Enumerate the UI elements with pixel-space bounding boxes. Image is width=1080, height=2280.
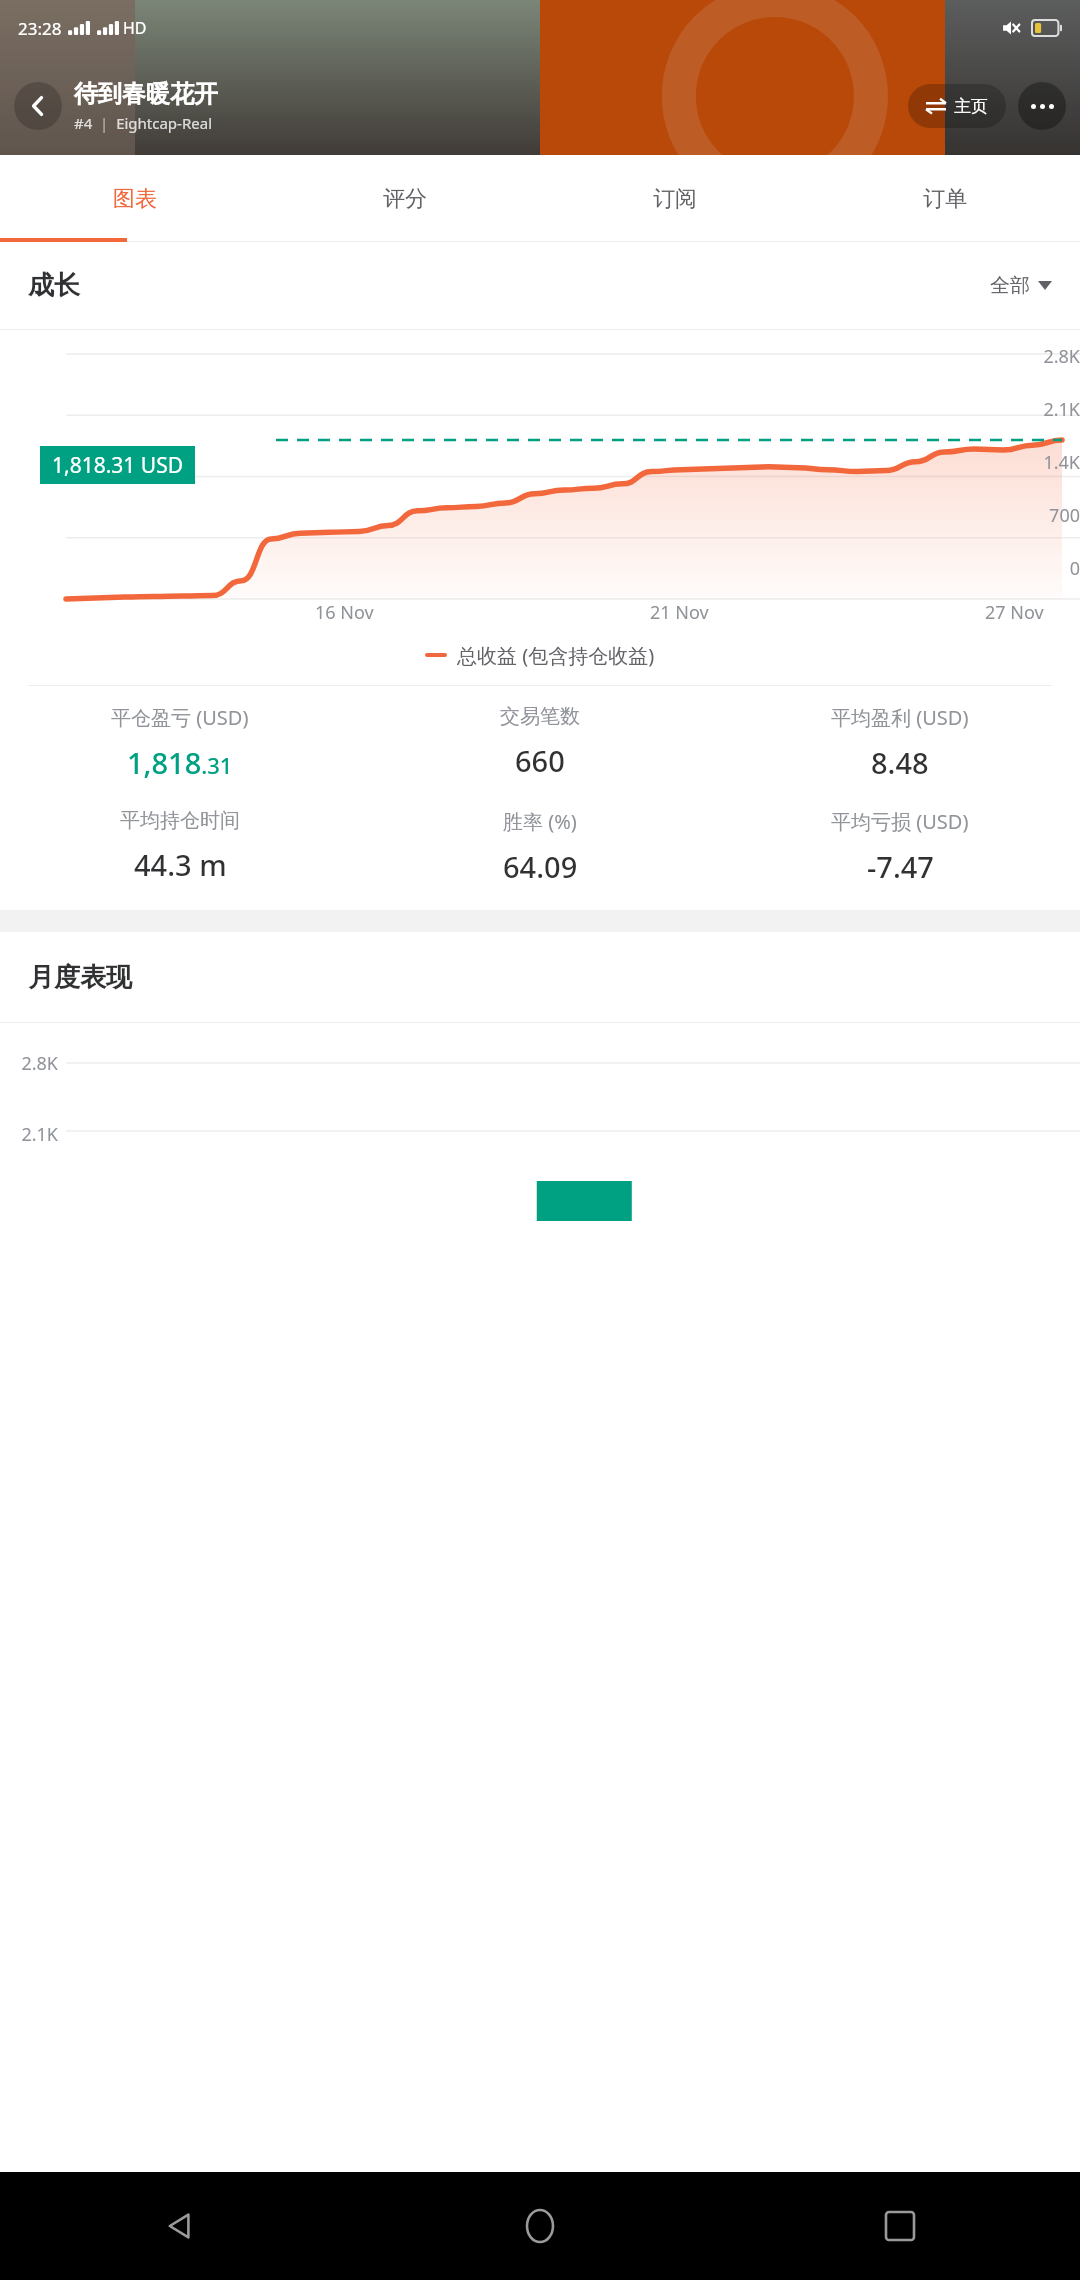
staticText: HD xyxy=(123,17,147,39)
button[interactable]: Home xyxy=(360,2172,720,2280)
staticText: 44.3 m xyxy=(134,845,227,884)
staticText: 700 xyxy=(1020,503,1080,528)
staticText: 图表 xyxy=(113,185,157,213)
staticText: 平均持仓时间 xyxy=(120,808,240,833)
staticText: 订阅 xyxy=(653,185,697,213)
staticText: 1,818.31 USD xyxy=(52,451,183,480)
button[interactable]: 平仓盈亏 (USD) xyxy=(0,704,360,782)
staticText: -7.47 xyxy=(867,847,934,886)
staticText: 月度表现 xyxy=(28,961,132,994)
staticText: 21 Nov xyxy=(650,600,709,625)
staticText: 2.8K xyxy=(0,1051,58,1076)
button[interactable]: Back xyxy=(0,2172,360,2280)
button[interactable]: 平均持仓时间 xyxy=(0,808,360,884)
staticText: 胜率 (%) xyxy=(503,808,577,835)
staticText: 0 xyxy=(1020,556,1080,581)
staticText: 待到春暖花开 xyxy=(74,79,218,109)
staticText: 23:28 xyxy=(18,17,62,40)
button[interactable]: 全部 xyxy=(990,273,1052,298)
staticText: 全部 xyxy=(990,273,1030,298)
button[interactable]: 主页 xyxy=(908,84,1006,128)
staticText: 订单 xyxy=(923,185,967,213)
staticText: 660 xyxy=(515,741,565,780)
staticText: 主页 xyxy=(954,96,988,117)
staticText: 总收益 (包含持仓收益) xyxy=(457,642,655,669)
button[interactable]: Recent apps xyxy=(720,2172,1080,2280)
button[interactable]: 平均盈利 (USD) xyxy=(720,704,1080,782)
button[interactable]: 胜率 (%) xyxy=(360,808,720,886)
staticText: 评分 xyxy=(383,185,427,213)
staticText: 8.48 xyxy=(871,743,929,782)
staticText: 2.1K xyxy=(0,1122,58,1147)
staticText: 64.09 xyxy=(503,847,578,886)
staticText: 平均盈利 (USD) xyxy=(831,704,969,731)
staticText: #4 | Eightcap-Real xyxy=(74,113,213,133)
staticText: 平仓盈亏 (USD) xyxy=(111,704,249,731)
staticText: 27 Nov xyxy=(985,600,1044,625)
button[interactable]: 订阅 xyxy=(540,155,810,242)
button[interactable]: 平均亏损 (USD) xyxy=(720,808,1080,886)
staticText: 2.8K xyxy=(1020,344,1080,369)
staticText: 成长 xyxy=(28,269,80,302)
staticText: 16 Nov xyxy=(315,600,374,625)
staticText: 2.1K xyxy=(1020,397,1080,422)
staticText: 1.4K xyxy=(1020,450,1080,475)
button[interactable]: 订单 xyxy=(810,155,1080,242)
button[interactable]: 图表 xyxy=(0,155,270,242)
button[interactable]: Back xyxy=(14,82,62,130)
staticText: 平均亏损 (USD) xyxy=(831,808,969,835)
staticText: 1,818.31 xyxy=(127,743,233,782)
staticText: 交易笔数 xyxy=(500,704,580,729)
button[interactable]: 评分 xyxy=(270,155,540,242)
button[interactable]: 交易笔数 xyxy=(360,704,720,780)
button[interactable]: More options xyxy=(1018,82,1066,130)
